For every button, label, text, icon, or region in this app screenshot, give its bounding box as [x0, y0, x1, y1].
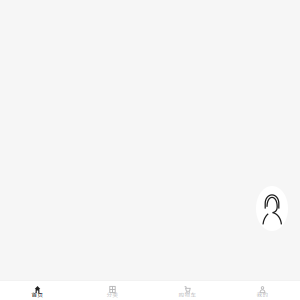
staticText: 我的 — [256, 290, 268, 299]
button[interactable]: 分类 — [75, 281, 150, 300]
staticText: 购物车 — [178, 290, 196, 299]
button[interactable]: 我的 — [225, 281, 300, 300]
button[interactable]: 在线客服 — [256, 186, 288, 231]
button[interactable]: 购物车 — [150, 281, 225, 300]
button[interactable]: 首页 — [0, 281, 75, 300]
staticText: 分类 — [106, 290, 118, 299]
staticText: 首页 — [31, 290, 43, 299]
